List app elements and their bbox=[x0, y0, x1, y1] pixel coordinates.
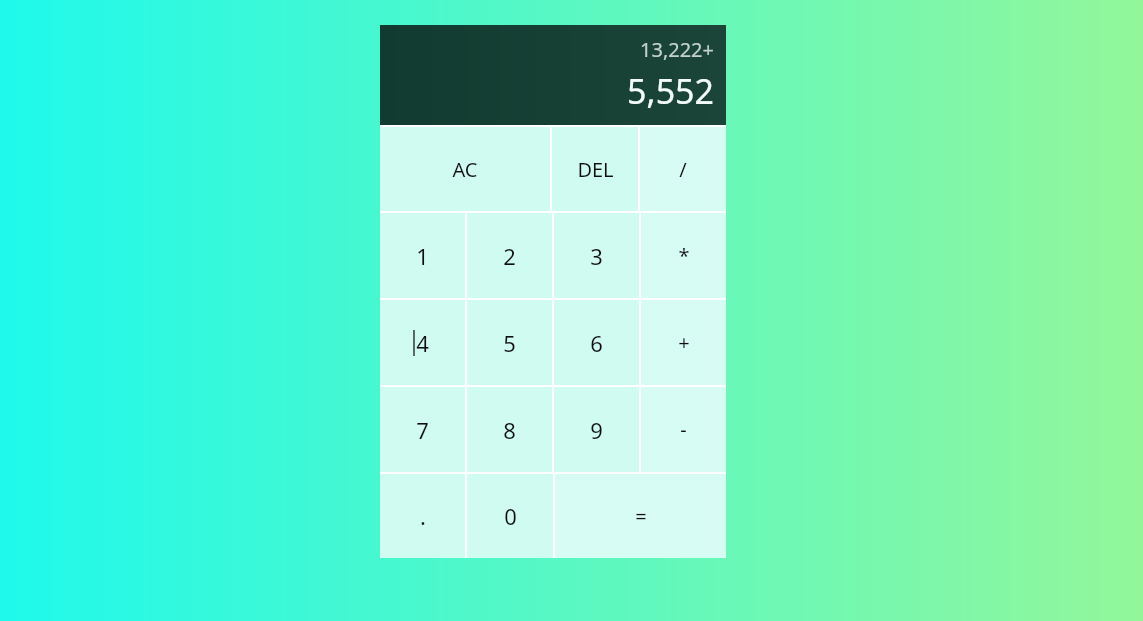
button[interactable]: 6 bbox=[554, 300, 639, 385]
staticText: 2 bbox=[503, 241, 516, 271]
staticText: 8 bbox=[503, 415, 516, 445]
staticText: 6 bbox=[590, 328, 603, 358]
staticText: 5 bbox=[503, 328, 516, 358]
staticText: 0 bbox=[504, 501, 517, 531]
button[interactable]: 0 bbox=[467, 474, 553, 558]
button[interactable]: Multiply bbox=[641, 213, 726, 298]
button[interactable]: 4 bbox=[380, 300, 465, 385]
button[interactable]: Divide bbox=[640, 127, 726, 211]
button[interactable]: 9 bbox=[554, 387, 639, 472]
staticText: DEL bbox=[577, 156, 614, 183]
staticText: AC bbox=[452, 156, 478, 183]
button[interactable]: 2 bbox=[467, 213, 552, 298]
staticText: - bbox=[680, 416, 687, 443]
button[interactable]: 3 bbox=[554, 213, 639, 298]
button[interactable]: Plus bbox=[641, 300, 726, 385]
button[interactable]: All clear bbox=[380, 127, 550, 211]
staticText: / bbox=[679, 156, 687, 183]
staticText: 7 bbox=[416, 415, 429, 445]
staticText: 9 bbox=[590, 415, 603, 445]
staticText: + bbox=[678, 329, 690, 356]
button[interactable]: Equals bbox=[555, 474, 726, 558]
staticText: . bbox=[420, 501, 426, 531]
staticText: 5,552 bbox=[627, 68, 714, 114]
button[interactable]: Minus bbox=[641, 387, 726, 472]
button[interactable]: Delete bbox=[552, 127, 638, 211]
staticText: 4 bbox=[416, 328, 429, 358]
staticText: 1 bbox=[416, 241, 429, 271]
staticText: * bbox=[678, 242, 690, 269]
staticText: 13,222+ bbox=[640, 36, 714, 63]
button[interactable]: 7 bbox=[380, 387, 465, 472]
button[interactable]: 8 bbox=[467, 387, 552, 472]
button[interactable]: 5 bbox=[467, 300, 552, 385]
staticText: = bbox=[635, 503, 647, 530]
button[interactable]: 1 bbox=[380, 213, 465, 298]
button[interactable]: . bbox=[380, 474, 465, 558]
staticText: 3 bbox=[590, 241, 603, 271]
